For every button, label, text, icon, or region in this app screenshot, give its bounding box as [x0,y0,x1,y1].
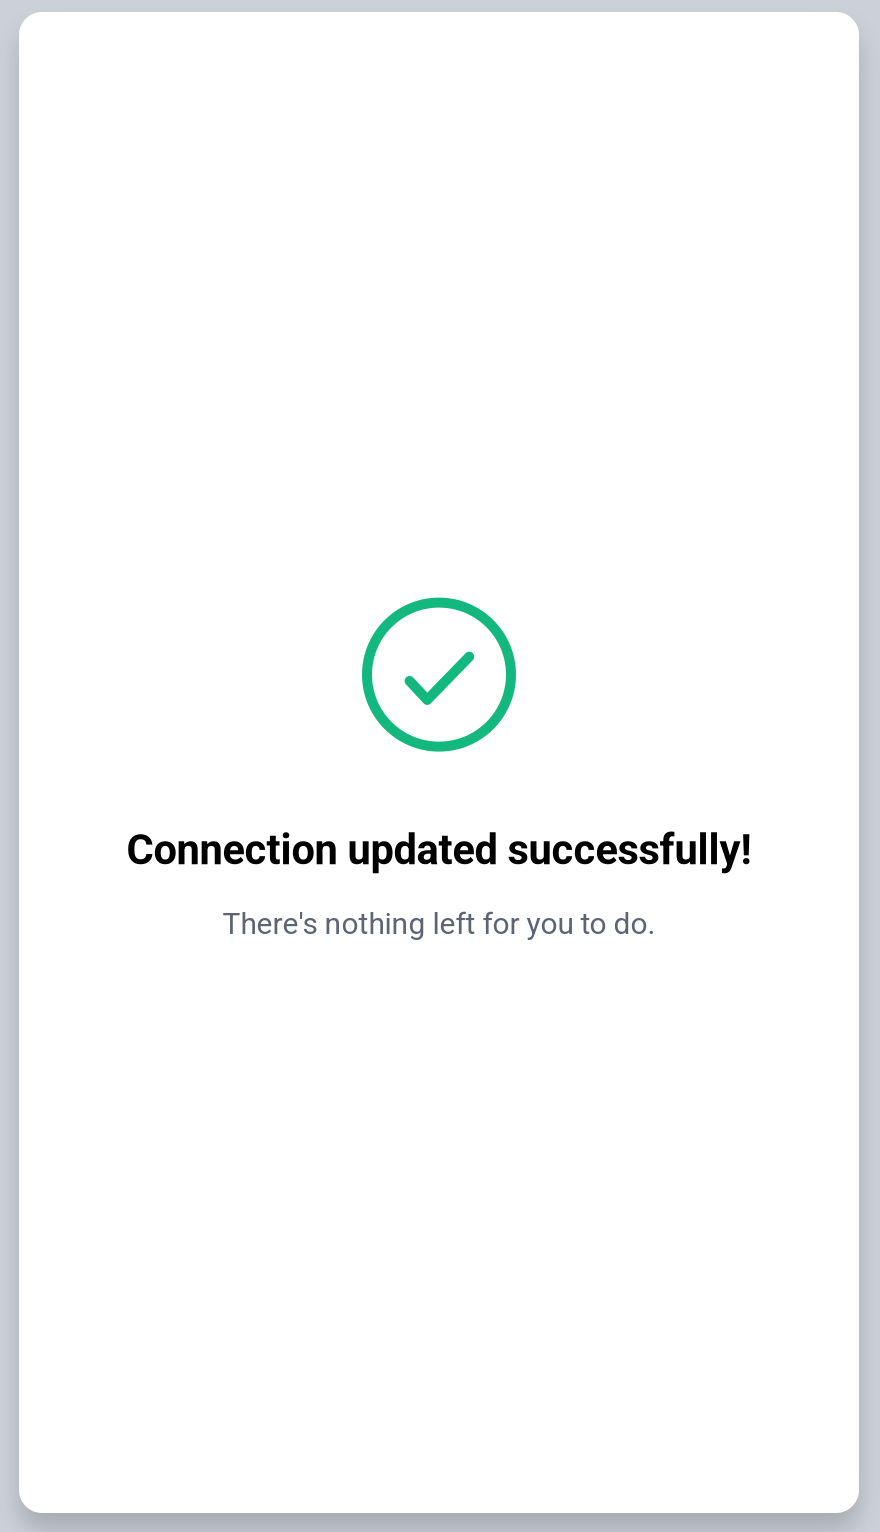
staticText: Connection updated successfully! [126,826,751,874]
staticText: There's nothing left for you to do. [222,906,655,941]
